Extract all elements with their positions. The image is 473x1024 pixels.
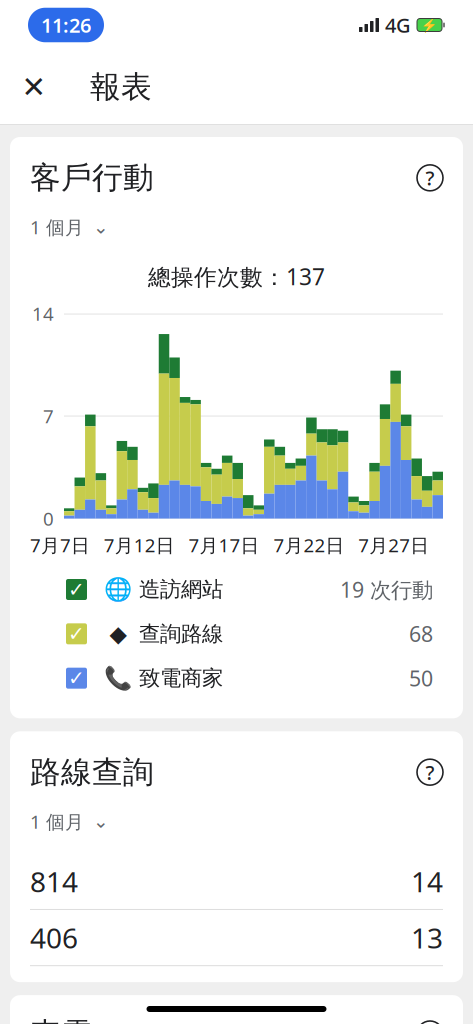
staticText: ?	[425, 759, 434, 785]
staticText: ✕	[21, 70, 46, 104]
staticText: 814	[30, 863, 78, 900]
staticText: ⌄	[93, 811, 109, 832]
button[interactable]: Help	[417, 759, 443, 785]
staticText: ?	[425, 1021, 434, 1024]
staticText: 總操作次數：137	[148, 261, 325, 292]
staticText: ✓	[68, 578, 85, 601]
button[interactable]: 1 個月	[30, 809, 109, 834]
button[interactable]: Help	[417, 1021, 443, 1024]
staticText: 13	[411, 919, 443, 956]
staticText: ⌄	[93, 216, 109, 238]
staticText: ✓	[68, 622, 85, 645]
staticText: 7月12日	[104, 533, 175, 557]
staticText: 7	[43, 404, 54, 428]
staticText: ◆	[109, 621, 126, 647]
staticText: 0	[43, 506, 54, 531]
staticText: 報表	[90, 68, 152, 106]
staticText: 造訪網站	[139, 576, 223, 603]
staticText: 路線查詢	[30, 753, 154, 791]
staticText: 致電商家	[139, 665, 223, 691]
staticText: 📞	[104, 665, 132, 691]
staticText: 7月27日	[358, 533, 429, 557]
button[interactable]: Close	[12, 65, 56, 109]
button[interactable]: ✓	[66, 567, 433, 612]
staticText: ✓	[68, 667, 85, 689]
staticText: 1 個月	[30, 809, 84, 834]
staticText: 7月22日	[273, 533, 344, 557]
button[interactable]: ✓	[66, 656, 433, 700]
staticText: ?	[425, 165, 434, 191]
button[interactable]: 1 個月	[30, 215, 109, 239]
button[interactable]: Help	[417, 165, 443, 191]
button[interactable]: ✓	[66, 612, 433, 656]
staticText: 客戶行動	[30, 159, 154, 197]
staticText: 11:26	[41, 12, 91, 38]
staticText: 1 個月	[30, 215, 84, 239]
staticText: 19 次行動	[340, 575, 433, 604]
staticText: 來電	[30, 1015, 92, 1024]
staticText: ⚡	[421, 17, 438, 33]
staticText: 7月17日	[189, 533, 260, 557]
staticText: 50	[409, 664, 433, 692]
staticText: 14	[411, 863, 443, 900]
staticText: 4G	[385, 12, 411, 38]
staticText: 68	[409, 620, 433, 648]
staticText: 查詢路線	[139, 621, 223, 647]
staticText: 406	[30, 919, 78, 956]
staticText: 7月7日	[30, 533, 90, 557]
staticText: 🌐	[104, 577, 132, 602]
staticText: 14	[32, 301, 54, 326]
